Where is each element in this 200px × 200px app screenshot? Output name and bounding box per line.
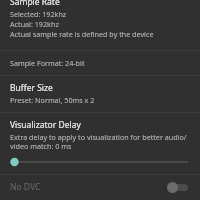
button[interactable]: Visualizator delay slider [10, 156, 190, 168]
button[interactable]: Sample Rate [0, 0, 200, 47]
button[interactable]: Visualizator Delay [0, 113, 200, 174]
button[interactable]: No DVC [0, 175, 200, 200]
staticText: Selected: 192khz [10, 9, 67, 19]
staticText: Visualizator Delay [10, 119, 81, 131]
button[interactable]: Sample Format: 24-bit [0, 51, 200, 75]
button[interactable]: Buffer Size [0, 76, 200, 112]
staticText: Sample Rate [10, 0, 60, 8]
staticText: Preset: Normal, 50ms x 2 [10, 95, 95, 105]
button[interactable]: No DVC toggle [166, 181, 190, 194]
staticText: No DVC [10, 181, 41, 193]
staticText: Extra delay to apply to visualization fo… [10, 132, 190, 151]
staticText: Buffer Size [10, 82, 53, 94]
staticText: Actual: 192khz [10, 19, 59, 29]
staticText: Actual sample rate is defined by the dev… [10, 29, 154, 39]
staticText: Sample Format: 24-bit [10, 58, 85, 68]
